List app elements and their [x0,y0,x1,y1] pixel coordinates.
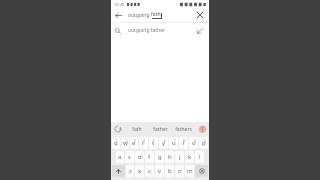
button[interactable]: y [159,137,168,149]
button[interactable]: e [130,137,138,149]
staticText: 2 [126,139,128,143]
staticText: e [132,139,136,147]
staticText: outgoing father [128,27,166,34]
staticText: fath [132,126,142,133]
staticText: outgoing [128,12,151,19]
button[interactable]: father [149,122,172,136]
staticText: 0 [204,139,206,143]
staticText: 8 [183,139,185,143]
staticText: j [179,153,181,161]
staticText: p [202,139,206,147]
staticText: 5 [153,139,155,143]
staticText: o [192,139,196,147]
button[interactable]: Google [111,122,125,136]
button[interactable]: Insert suggestion [193,24,207,38]
button[interactable]: q [112,137,120,149]
staticText: q [114,139,118,147]
staticText: y [162,139,166,147]
button[interactable]: Back [111,8,125,22]
button[interactable]: d [135,151,144,163]
button[interactable]: h [165,151,174,163]
staticText: 10:30 [114,2,125,7]
button[interactable]: b [165,165,174,177]
staticText: 9 [194,139,196,143]
button[interactable]: v [155,165,164,177]
staticText: g [158,153,162,161]
staticText: 1 [116,139,118,143]
staticText: s [128,153,131,161]
staticText: 3 [134,139,136,143]
staticText: t [152,139,155,147]
staticText: c [148,167,151,175]
button[interactable]: x [135,165,144,177]
staticText: h [168,153,172,161]
staticText: v [158,167,162,175]
button[interactable]: fath [125,122,149,136]
staticText: fath [151,11,161,18]
staticText: r [142,139,145,147]
button[interactable]: l [195,151,204,163]
button[interactable]: p [199,137,208,149]
staticText: 7 [174,139,176,143]
staticText: a [118,153,122,161]
button[interactable]: g [155,151,164,163]
button[interactable]: Shift [112,165,125,177]
button[interactable]: outgoing father [111,23,209,38]
button[interactable]: k [185,151,194,163]
staticText: d [138,153,142,161]
staticText: z [129,167,132,175]
staticText: k [188,153,192,161]
button[interactable]: Clear [193,8,207,22]
button[interactable]: More options [195,122,209,136]
button[interactable]: u [169,137,178,149]
button[interactable]: t [149,137,158,149]
button[interactable]: i [179,137,188,149]
button[interactable]: r [139,137,148,149]
button[interactable]: j [175,151,184,163]
staticText: b [168,167,172,175]
button[interactable]: z [126,165,134,177]
staticText: father [153,126,168,133]
staticText: i [183,139,185,147]
staticText: w [123,139,128,147]
button[interactable]: c [145,165,154,177]
button[interactable]: fathers [172,122,195,136]
staticText: 4 [143,139,145,143]
button[interactable]: a [116,151,124,163]
staticText: 6 [164,139,166,143]
staticText: u [172,139,176,147]
staticText: l [199,153,201,161]
staticText: fathers [175,126,192,133]
button[interactable]: Backspace [195,165,208,177]
staticText: n [178,167,182,175]
button[interactable]: f [145,151,154,163]
button[interactable]: n [175,165,184,177]
button[interactable]: s [125,151,134,163]
button[interactable]: o [189,137,198,149]
staticText: x [138,167,142,175]
staticText: f [148,153,151,161]
button[interactable]: m [185,165,194,177]
button[interactable]: w [121,137,129,149]
staticText: m [187,167,193,175]
